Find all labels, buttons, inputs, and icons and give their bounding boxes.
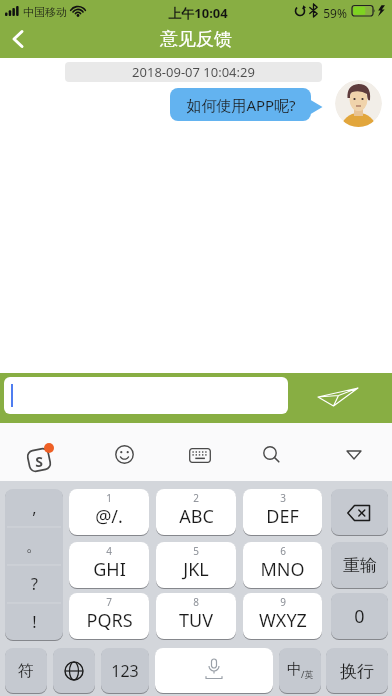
button[interactable] [115,445,134,464]
staticText: /英 [301,668,314,680]
staticText: GHI [93,557,126,582]
staticText: 符 [18,661,34,681]
button[interactable]: 重输 [331,542,388,589]
staticText: 上午10:04 [168,4,228,22]
staticText: 123 [111,660,139,682]
staticText: JKL [183,557,209,582]
staticText: 中 [287,660,302,679]
button[interactable]: 4 [69,542,149,589]
button[interactable]: 9 [243,593,322,640]
button[interactable]: 3 [243,489,322,536]
staticText: WXYZ [259,608,307,633]
button[interactable]: 2 [156,489,236,536]
staticText: 1 [106,491,112,505]
button[interactable]: 0 [331,593,388,640]
staticText: 5 [193,544,199,558]
staticText: ABC [179,504,214,529]
button[interactable] [12,30,24,48]
staticText: S [35,452,43,471]
staticText: 如何使用APP呢? [186,95,296,115]
button[interactable]: 中 [279,648,321,694]
button[interactable]: 6 [243,542,322,589]
button[interactable] [189,448,211,463]
staticText: ! [32,611,37,633]
button[interactable]: 5 [156,542,236,589]
staticText: MNO [260,557,305,582]
button[interactable] [4,377,288,414]
staticText: TUV [179,608,213,633]
staticText: 重输 [343,555,377,576]
button[interactable]: 如何使用APP呢? [170,88,311,121]
staticText: 7 [106,595,112,609]
button[interactable]: 符 [5,648,47,694]
staticText: ? [31,573,38,595]
staticText: 2018-09-07 10:04:29 [132,63,255,81]
button[interactable]: , [5,489,63,641]
staticText: 8 [193,595,199,609]
staticText: 3 [280,491,286,505]
staticText: DEF [266,504,299,529]
button[interactable] [317,387,359,407]
button[interactable] [263,446,280,463]
staticText: 9 [280,595,286,609]
button[interactable] [346,450,362,460]
staticText: @/. [95,504,123,529]
button[interactable]: 7 [69,593,149,640]
staticText: 6 [280,544,286,558]
staticText: 0 [354,604,365,629]
button[interactable]: 8 [156,593,236,640]
staticText: , [32,497,37,519]
button[interactable] [331,489,388,536]
button[interactable]: S [27,444,54,471]
staticText: 意见反馈 [0,28,392,51]
staticText: 59% [323,5,347,21]
staticText: 中国移动 [23,5,67,19]
staticText: 。 [26,536,42,556]
button[interactable] [53,648,95,694]
staticText: 2 [193,491,199,505]
staticText: 换行 [340,661,374,682]
button[interactable]: 123 [101,648,149,694]
button[interactable] [155,648,273,694]
button[interactable]: 换行 [326,648,388,694]
staticText: 4 [106,544,112,558]
button[interactable]: 1 [69,489,149,536]
staticText: PQRS [86,608,133,633]
